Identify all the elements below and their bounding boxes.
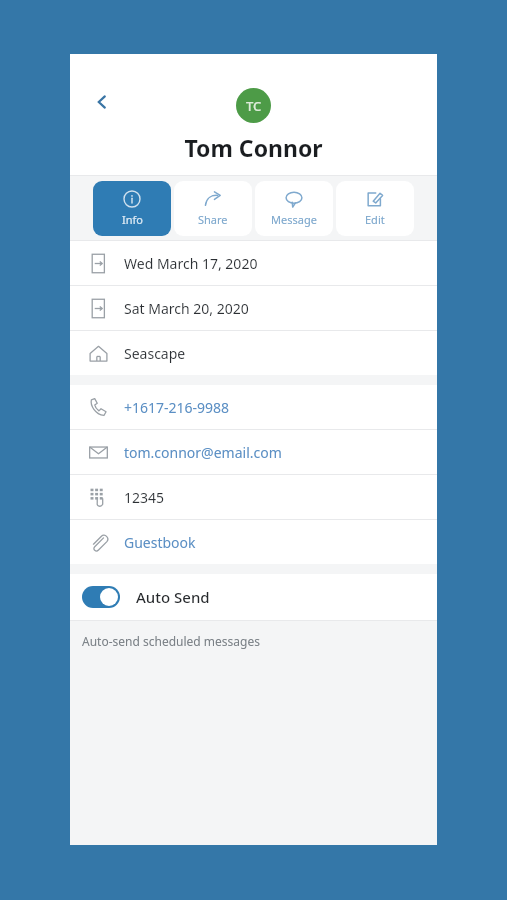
staticText: Info xyxy=(122,212,143,227)
button[interactable]: Edit xyxy=(336,181,414,236)
staticText: Auto Send xyxy=(136,587,210,607)
staticText: Tom Connor xyxy=(184,132,323,163)
staticText: Seascape xyxy=(124,344,186,363)
staticText: Auto-send scheduled messages xyxy=(82,633,260,649)
button[interactable]: Share xyxy=(174,181,252,236)
button[interactable]: Auto Send xyxy=(70,574,437,620)
staticText: Edit xyxy=(365,212,385,227)
button[interactable]: Guestbook xyxy=(70,520,437,564)
button[interactable]: +1617-216-9988 xyxy=(70,385,437,429)
staticText: 12345 xyxy=(124,488,165,507)
button[interactable]: Wed March 17, 2020 xyxy=(70,241,437,285)
staticText: Share xyxy=(198,212,228,227)
staticText: TC xyxy=(246,97,262,115)
button[interactable]: Message xyxy=(255,181,333,236)
button[interactable]: Info xyxy=(93,181,171,236)
button[interactable]: Back xyxy=(82,82,122,122)
button[interactable]: Seascape xyxy=(70,331,437,375)
button[interactable]: 12345 xyxy=(70,475,437,519)
button[interactable]: tom.connor@email.com xyxy=(70,430,437,474)
staticText: Wed March 17, 2020 xyxy=(124,254,258,273)
staticText: Message xyxy=(271,212,317,227)
staticText: tom.connor@email.com xyxy=(124,443,282,462)
staticText: Guestbook xyxy=(124,533,196,552)
staticText: +1617-216-9988 xyxy=(124,398,230,417)
button[interactable]: Sat March 20, 2020 xyxy=(70,286,437,330)
staticText: Sat March 20, 2020 xyxy=(124,299,249,318)
